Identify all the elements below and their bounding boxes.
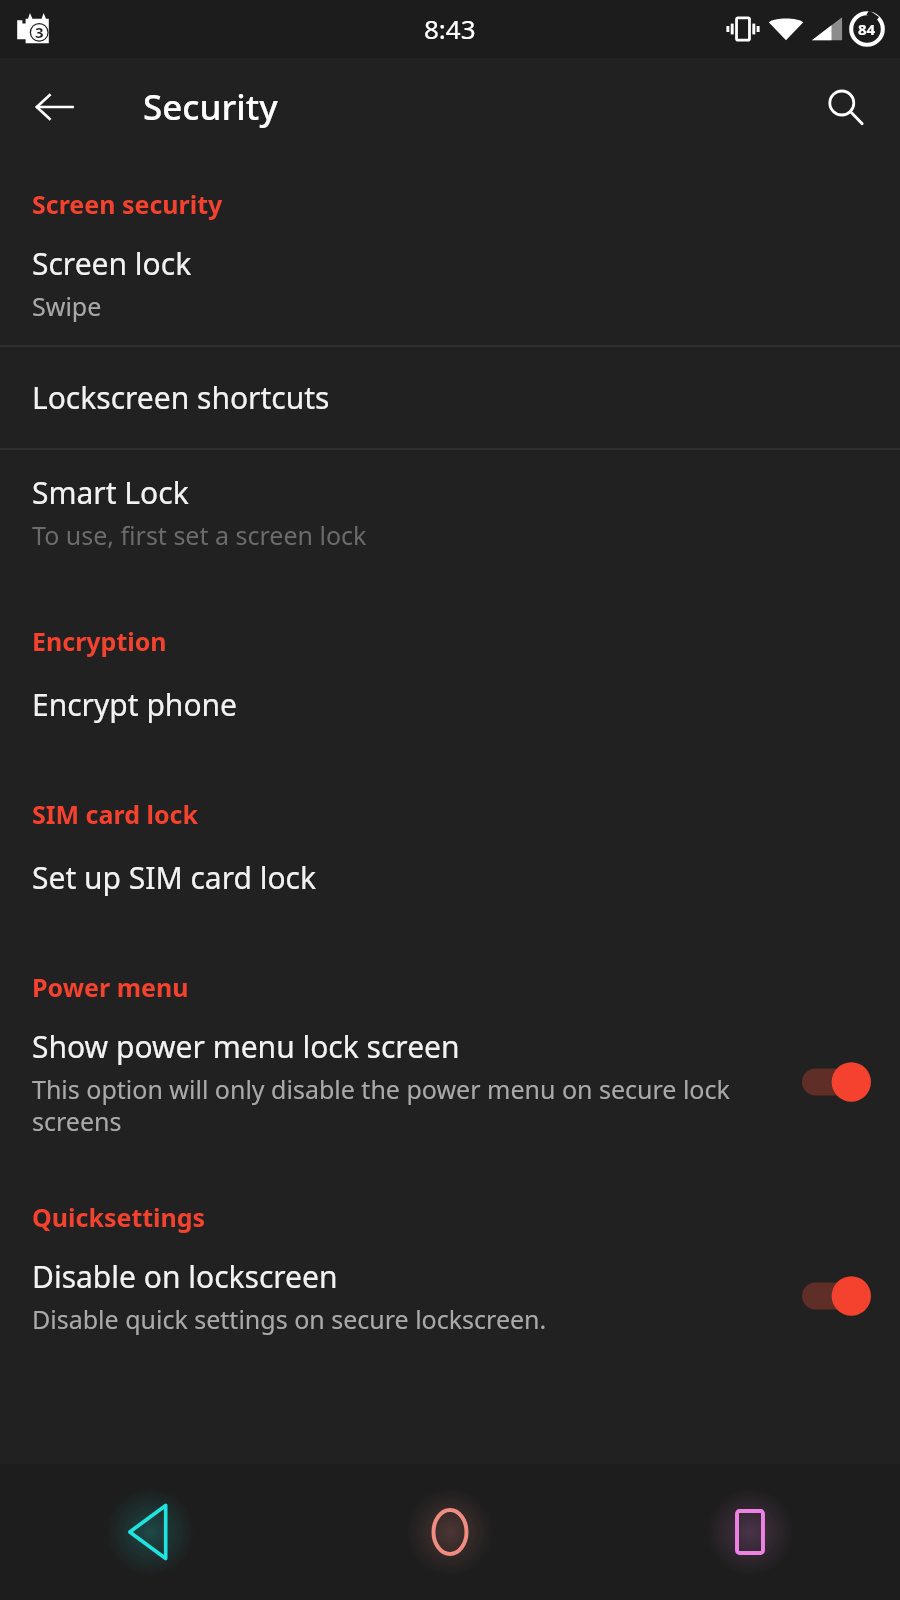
- staticText: Lockscreen shortcuts: [32, 377, 330, 418]
- button[interactable]: Back: [20, 72, 90, 142]
- button[interactable]: Back: [0, 1464, 300, 1600]
- staticText: 84: [858, 19, 876, 39]
- button[interactable]: Lockscreen shortcuts: [0, 347, 900, 448]
- staticText: This option will only disable the power …: [32, 1072, 774, 1138]
- staticText: Disable on lockscreen: [32, 1256, 338, 1297]
- staticText: Screen security: [32, 187, 223, 221]
- button[interactable]: Set up SIM card lock: [0, 831, 900, 918]
- button[interactable]: Smart Lock: [0, 450, 900, 570]
- staticText: Quicksettings: [32, 1200, 206, 1234]
- button[interactable]: Toggle Show power menu lock screen: [794, 1058, 874, 1106]
- staticText: 8:43: [424, 11, 476, 46]
- staticText: Encrypt phone: [32, 684, 237, 725]
- button[interactable]: Home: [300, 1464, 600, 1600]
- staticText: 3: [35, 22, 44, 42]
- button[interactable]: Screen lock: [0, 221, 900, 345]
- staticText: Swipe: [32, 289, 102, 323]
- button[interactable]: Recents: [600, 1464, 900, 1600]
- staticText: SIM card lock: [32, 797, 198, 831]
- staticText: Power menu: [32, 970, 189, 1004]
- staticText: To use, first set a screen lock: [32, 518, 367, 552]
- staticText: Encryption: [32, 624, 167, 658]
- button[interactable]: Disable on lockscreen: [0, 1234, 900, 1350]
- staticText: Screen lock: [32, 243, 192, 284]
- staticText: Disable quick settings on secure lockscr…: [32, 1302, 547, 1336]
- button[interactable]: Show power menu lock screen: [0, 1004, 900, 1152]
- button[interactable]: Encrypt phone: [0, 658, 900, 745]
- staticText: Smart Lock: [32, 472, 189, 513]
- button[interactable]: Search: [810, 72, 880, 142]
- staticText: Set up SIM card lock: [32, 857, 317, 898]
- button[interactable]: Toggle Disable on lockscreen: [794, 1272, 874, 1320]
- staticText: Security: [143, 83, 278, 131]
- staticText: Show power menu lock screen: [32, 1026, 460, 1067]
